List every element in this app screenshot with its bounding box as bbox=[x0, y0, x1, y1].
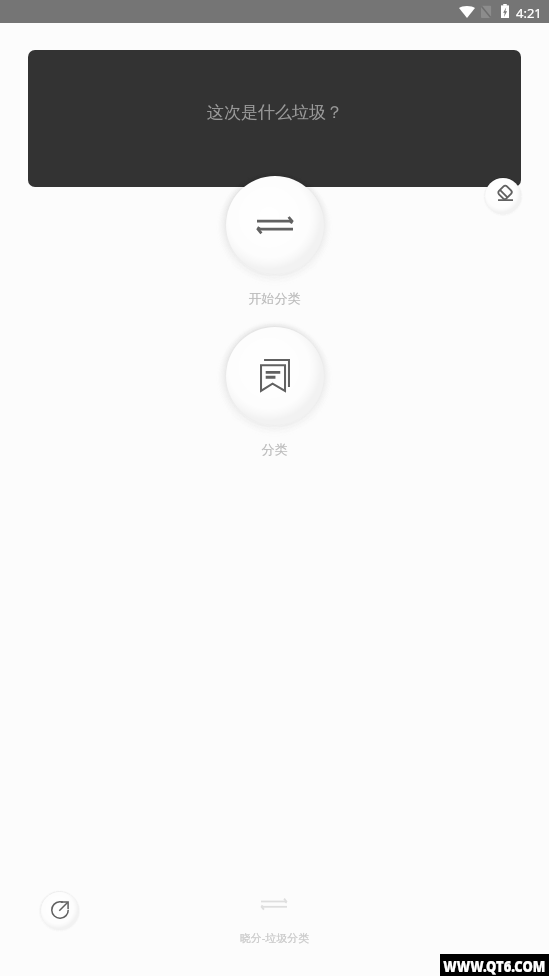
staticText: 4:21 bbox=[516, 4, 542, 22]
button[interactable]: Start sorting bbox=[226, 176, 324, 274]
button[interactable]: Categories bbox=[226, 327, 324, 425]
staticText: 这次是什么垃圾？ bbox=[207, 102, 343, 123]
button[interactable]: Clear bbox=[485, 178, 521, 214]
staticText: WWW.QT6.COM bbox=[443, 954, 546, 976]
staticText: 晓分-垃圾分类 bbox=[0, 930, 549, 945]
staticText: 分类 bbox=[0, 441, 549, 457]
button[interactable]: Share bbox=[41, 892, 79, 930]
staticText: 开始分类 bbox=[0, 290, 549, 306]
